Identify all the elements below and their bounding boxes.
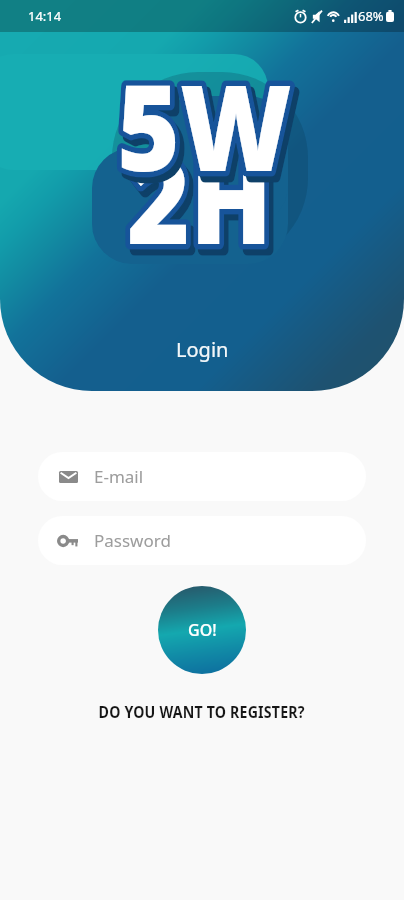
staticText: 14:14 [28, 7, 62, 25]
staticText: 2H [127, 117, 272, 279]
button[interactable]: Password [38, 516, 366, 565]
button[interactable]: DO YOU WANT TO REGISTER? [79, 697, 325, 726]
staticText: 5W [121, 50, 297, 212]
staticText: 5W [121, 50, 297, 212]
staticText: 5W [117, 44, 292, 206]
staticText: Login [176, 336, 229, 363]
staticText: 5W [117, 44, 292, 206]
staticText: 2H [131, 123, 277, 285]
staticText: Password [94, 529, 171, 552]
staticText: GO! [188, 619, 217, 641]
staticText: 2H [131, 123, 277, 285]
staticText: DO YOU WANT TO REGISTER? [99, 701, 305, 722]
button[interactable]: E-mail [38, 452, 366, 501]
staticText: E-mail [94, 465, 144, 488]
staticText: 68% [358, 7, 384, 25]
staticText: 2H [127, 117, 272, 279]
button[interactable]: GO! [158, 586, 246, 674]
